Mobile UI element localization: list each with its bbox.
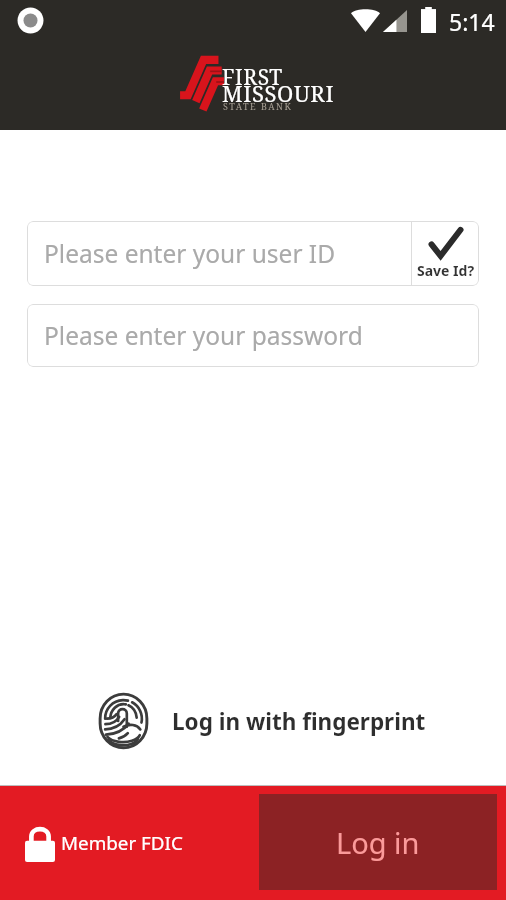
button[interactable]: Please enter your user ID [27, 221, 411, 286]
staticText: Log in [336, 823, 420, 862]
staticText: Member FDIC [61, 830, 183, 856]
staticText: FIRST [222, 63, 283, 92]
other: Camera indicator [17, 7, 44, 34]
staticText: 5:14 [449, 6, 495, 37]
staticText: MISSOURI [222, 78, 335, 108]
button[interactable]: Please enter your password [27, 304, 479, 367]
staticText: Please enter your password [44, 319, 363, 352]
button[interactable]: Log in with fingerprint [0, 692, 506, 750]
button[interactable]: Member FDIC [0, 816, 197, 870]
button[interactable]: Log in [259, 794, 497, 890]
staticText: Please enter your user ID [44, 237, 336, 270]
button[interactable]: Save Id? [412, 221, 479, 286]
staticText: STATE BANK [223, 100, 293, 112]
staticText: Save Id? [417, 261, 475, 280]
staticText: Log in with fingerprint [172, 706, 426, 737]
